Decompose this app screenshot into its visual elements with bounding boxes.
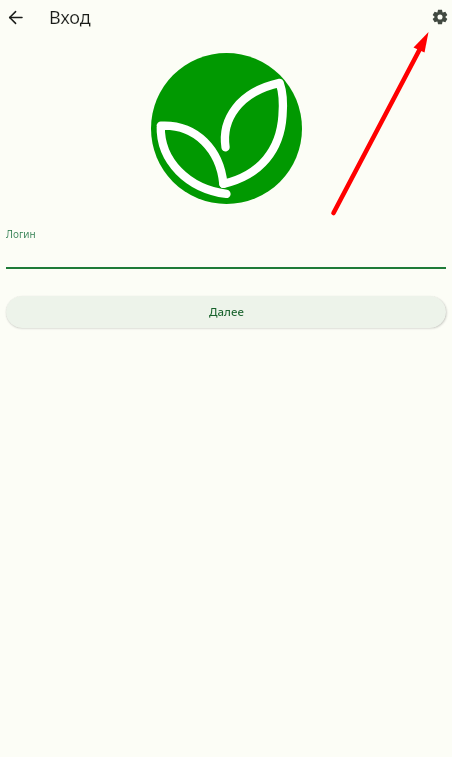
button[interactable]: Back <box>4 5 28 29</box>
button[interactable]: Settings <box>428 5 452 29</box>
staticText: Далее <box>209 304 244 320</box>
staticText: Вход <box>49 5 91 30</box>
button[interactable]: Далее <box>6 296 446 328</box>
staticText: Логин <box>6 227 36 241</box>
